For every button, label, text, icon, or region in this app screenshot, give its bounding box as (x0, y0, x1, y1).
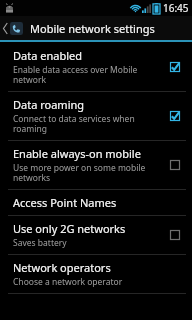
staticText: Use only 2G networks (13, 221, 126, 236)
staticText: Enable data access over Mobile network (13, 64, 160, 86)
staticText: Choose a network operator (13, 276, 123, 288)
button[interactable]: Enable always-on mobile data (0, 141, 192, 189)
button[interactable]: Data roaming (166, 107, 184, 125)
staticText: Mobile network settings (30, 21, 155, 36)
button[interactable]: Enable always-on mobile data (166, 156, 184, 174)
staticText: 16:45 (163, 1, 189, 15)
staticText: Enable always-on mobile data (13, 146, 160, 161)
button[interactable]: Data enabled (0, 43, 192, 91)
staticText: Data enabled (13, 48, 82, 63)
staticText: Use more power on some mobile networks (13, 162, 160, 184)
button[interactable]: Access Point Names (0, 190, 192, 215)
button[interactable]: Data roaming (0, 92, 192, 140)
button[interactable]: Use only 2G networks (166, 226, 184, 244)
staticText: Connect to data services when roaming (13, 113, 160, 135)
button[interactable]: Use only 2G networks (0, 216, 192, 254)
staticText: Data roaming (13, 97, 85, 112)
button[interactable]: Data enabled (166, 58, 184, 76)
staticText: Access Point Names (13, 195, 117, 210)
button[interactable]: Navigate up (0, 22, 25, 35)
button[interactable]: Network operators (0, 255, 192, 293)
staticText: Saves battery (13, 237, 67, 249)
staticText: Network operators (13, 260, 111, 275)
